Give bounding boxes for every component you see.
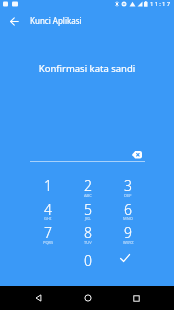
staticText: 9 bbox=[124, 223, 132, 242]
button[interactable]: 8 bbox=[71, 221, 105, 244]
staticText: 8 bbox=[84, 223, 92, 242]
staticText: GHI bbox=[44, 216, 52, 221]
staticText: TUV bbox=[84, 240, 92, 245]
button[interactable]: 9 bbox=[111, 221, 145, 244]
button[interactable]: 3 bbox=[111, 174, 145, 197]
staticText: 11:17 bbox=[150, 0, 172, 8]
button[interactable]: 0 bbox=[71, 249, 105, 272]
button[interactable] bbox=[112, 286, 161, 310]
staticText: 1 bbox=[44, 176, 52, 195]
button[interactable] bbox=[127, 147, 147, 162]
button[interactable]: 5 bbox=[71, 198, 105, 221]
staticText: 6 bbox=[124, 200, 132, 219]
button[interactable]: 1 bbox=[31, 174, 65, 197]
staticText: 2 bbox=[84, 176, 92, 195]
staticText: DEF bbox=[124, 193, 132, 198]
button[interactable] bbox=[63, 286, 112, 310]
staticText: 3 bbox=[124, 176, 132, 195]
button[interactable] bbox=[0, 8, 28, 34]
staticText: WXYZ bbox=[123, 240, 134, 245]
button[interactable]: 4 bbox=[31, 198, 65, 221]
staticText: 5 bbox=[84, 200, 92, 219]
button[interactable]: 2 bbox=[71, 174, 105, 197]
button[interactable]: 7 bbox=[31, 221, 65, 244]
staticText: JKL bbox=[85, 216, 91, 221]
staticText: 4 bbox=[44, 200, 52, 219]
staticText: ABC bbox=[84, 193, 92, 198]
staticText: MNO bbox=[123, 216, 133, 221]
staticText: 7 bbox=[44, 223, 52, 242]
button[interactable]: 6 bbox=[111, 198, 145, 221]
staticText: 0 bbox=[84, 251, 92, 270]
staticText: Kunci Aplikasi bbox=[30, 15, 82, 26]
staticText: PQRS bbox=[43, 240, 54, 245]
button[interactable] bbox=[14, 286, 63, 310]
staticText: Konfirmasi kata sandi bbox=[0, 62, 174, 75]
button[interactable] bbox=[110, 247, 140, 269]
